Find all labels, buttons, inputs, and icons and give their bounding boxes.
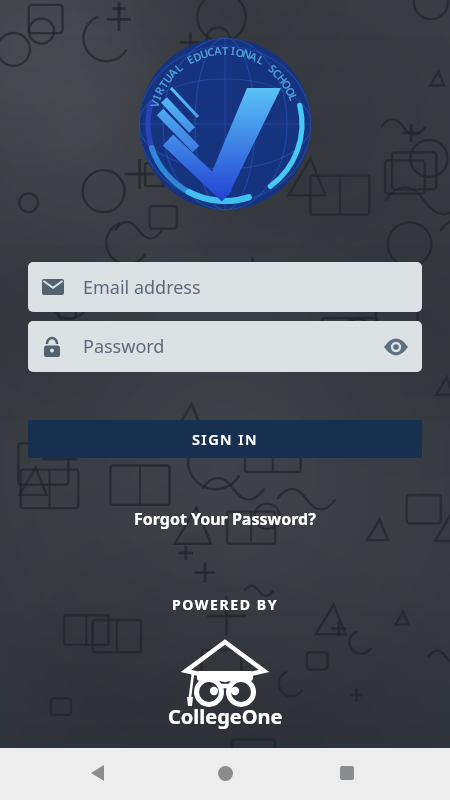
staticText: I bbox=[149, 92, 164, 101]
staticText: L bbox=[286, 92, 302, 103]
button[interactable]: Email address bbox=[28, 262, 422, 312]
button[interactable] bbox=[73, 749, 121, 797]
button[interactable]: SIGN IN bbox=[28, 420, 422, 458]
staticText: Password bbox=[83, 334, 165, 359]
button[interactable]: Password bbox=[28, 321, 422, 372]
staticText: L bbox=[255, 51, 268, 67]
staticText: A bbox=[248, 48, 260, 64]
staticText: R bbox=[151, 83, 167, 97]
staticText: Forgot Your Password? bbox=[134, 508, 316, 530]
staticText: T bbox=[155, 77, 171, 90]
staticText: D bbox=[191, 48, 204, 64]
staticText: U bbox=[198, 45, 211, 61]
staticText: I bbox=[230, 43, 237, 57]
staticText: CollegeOne bbox=[168, 703, 283, 730]
staticText: A bbox=[213, 43, 223, 57]
staticText: O bbox=[283, 84, 299, 99]
button[interactable]: Forgot Your Password? bbox=[0, 505, 450, 533]
staticText: L bbox=[171, 59, 185, 74]
staticText: T bbox=[222, 43, 229, 57]
button[interactable] bbox=[323, 749, 371, 797]
staticText: E bbox=[184, 51, 197, 66]
staticText: C bbox=[206, 43, 216, 59]
staticText: Email address bbox=[83, 275, 201, 300]
staticText: C bbox=[270, 65, 286, 81]
staticText: V bbox=[146, 98, 162, 109]
staticText: U bbox=[159, 70, 175, 85]
button[interactable] bbox=[201, 749, 249, 797]
staticText: H bbox=[275, 70, 292, 86]
staticText: S bbox=[266, 61, 281, 76]
staticText: N bbox=[241, 45, 254, 61]
staticText: SIGN IN bbox=[192, 429, 258, 449]
staticText: O bbox=[235, 44, 246, 60]
staticText: A bbox=[164, 64, 180, 80]
staticText: O bbox=[279, 77, 295, 92]
staticText: POWERED BY bbox=[172, 595, 278, 614]
